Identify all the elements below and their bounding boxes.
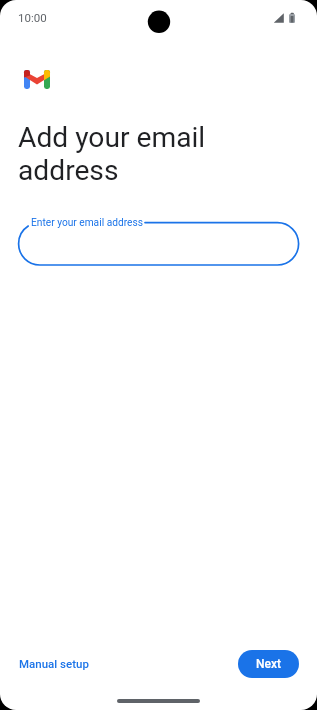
button[interactable]: Manual setup	[11, 651, 97, 676]
staticText: 10:00	[18, 11, 47, 24]
staticText: Enter your email address	[31, 217, 143, 229]
staticText: Next	[256, 657, 282, 671]
button[interactable]: Next	[238, 650, 299, 678]
button[interactable]: Enter your email address	[0, 212, 317, 272]
staticText: Manual setup	[19, 657, 89, 670]
staticText: Add your email address	[18, 121, 206, 187]
